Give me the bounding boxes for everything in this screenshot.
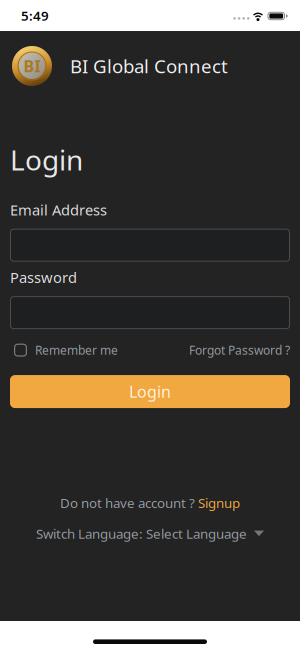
button[interactable]: Email Address: [10, 229, 290, 262]
staticText: Password: [10, 268, 77, 287]
staticText: 5:49: [21, 7, 49, 24]
button[interactable]: Signup: [198, 494, 240, 512]
staticText: Switch Language: Select Language: [36, 525, 247, 542]
staticText: Forgot Password ?: [189, 342, 290, 358]
button[interactable]: Password: [10, 296, 290, 329]
button[interactable]: Login: [10, 375, 290, 408]
staticText: BI Global Connect: [70, 54, 228, 78]
staticText: Remember me: [35, 342, 118, 358]
staticText: Do not have account ?: [60, 494, 198, 512]
staticText: Login: [129, 381, 171, 402]
staticText: BI: [23, 55, 40, 77]
staticText: Email Address: [10, 200, 107, 220]
staticText: Login: [10, 141, 83, 178]
button[interactable]: Select language: [36, 525, 264, 542]
button[interactable]: Forgot Password ?: [189, 342, 290, 358]
button[interactable]: Remember me: [14, 342, 118, 358]
staticText: Signup: [198, 494, 240, 512]
